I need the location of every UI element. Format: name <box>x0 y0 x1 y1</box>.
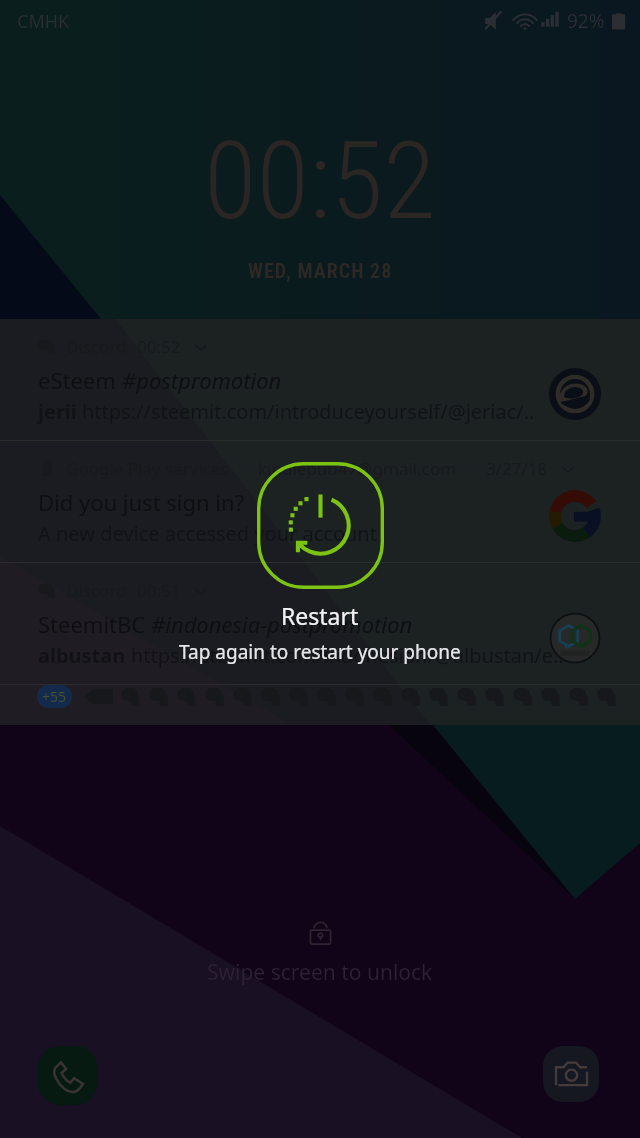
staticText: kindlepub47@gmail.com <box>258 457 457 480</box>
staticText: CMHK <box>17 9 70 34</box>
staticText: jerii <box>38 398 82 425</box>
staticText: WED, MARCH 28 <box>248 259 393 282</box>
button[interactable]: Phone <box>38 1046 97 1105</box>
button[interactable]: Discord <box>0 319 640 440</box>
staticText: Tap again to restart your phone <box>179 639 461 665</box>
staticText: 00:52 <box>204 118 436 245</box>
button[interactable]: Discord <box>0 563 640 684</box>
staticText: #postpromotion <box>122 365 282 395</box>
staticText: #indonesia-postpromotion <box>151 609 413 639</box>
staticText: https://steemit.com/indonesian/@albustan… <box>131 642 564 669</box>
staticText: Did you just sign in? <box>38 487 245 517</box>
staticText: SteemitBC <box>38 609 151 639</box>
button[interactable]: Restart <box>257 462 384 589</box>
staticText: A new device accessed your account <box>38 520 377 547</box>
staticText: Swipe screen to unlock <box>207 958 433 987</box>
staticText: https://steemit.com/introduceyourself/@j… <box>82 398 535 425</box>
button[interactable]: Camera <box>543 1046 599 1102</box>
staticText: eSteem <box>38 365 122 395</box>
staticText: 92% <box>567 8 605 34</box>
staticText: albustan <box>38 642 131 669</box>
button[interactable]: Google Play services <box>0 441 640 562</box>
staticText: Restart <box>281 600 359 631</box>
staticText: +55 <box>42 687 67 706</box>
